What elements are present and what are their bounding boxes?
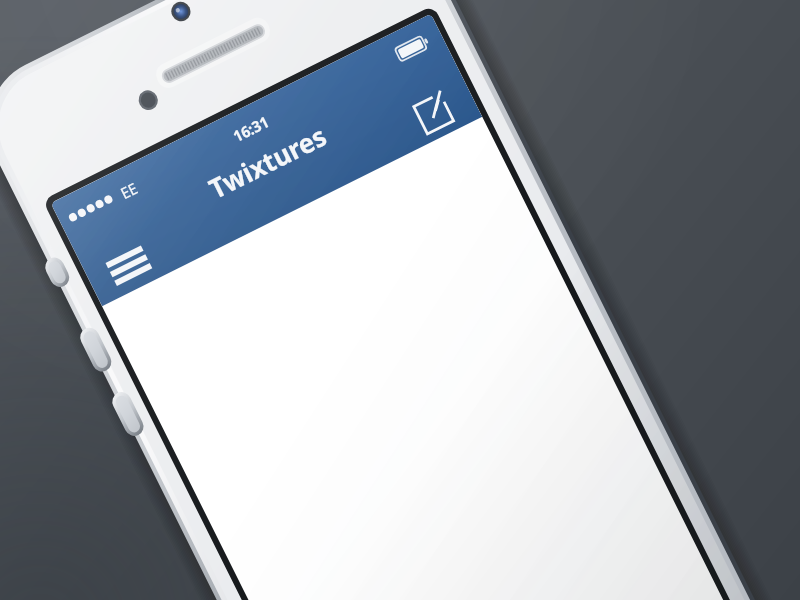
button[interactable]: Twixtures app on iPhone <box>0 0 800 600</box>
